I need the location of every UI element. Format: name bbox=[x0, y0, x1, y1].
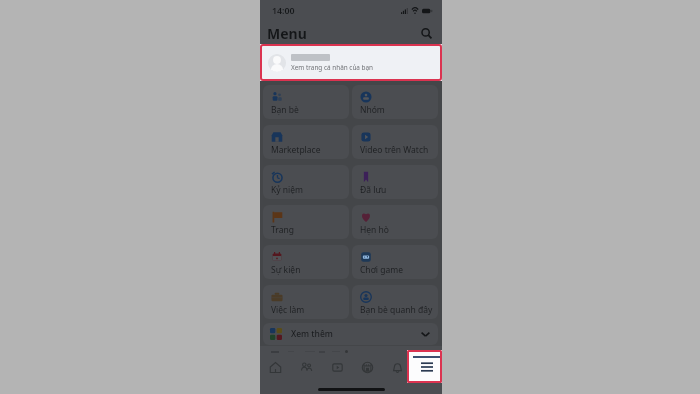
staticText: Chơi game bbox=[360, 264, 404, 276]
staticText: 14:00 bbox=[272, 5, 295, 17]
button[interactable]: Kỷ niệm bbox=[263, 165, 349, 199]
button[interactable]: Friends bbox=[291, 353, 322, 382]
button[interactable]: Bạn bè bbox=[263, 85, 349, 119]
button[interactable]: Marketplace bbox=[352, 353, 382, 382]
staticText: Bạn bè quanh đây bbox=[360, 304, 433, 316]
button[interactable]: Menu bbox=[407, 350, 442, 383]
staticText: Nhóm bbox=[360, 104, 385, 116]
staticText: Hẹn hò bbox=[360, 224, 389, 236]
staticText: Xem trang cá nhân của bạn bbox=[291, 63, 374, 72]
button[interactable]: Menu bbox=[412, 353, 442, 382]
button[interactable]: Search bbox=[419, 26, 434, 41]
button[interactable]: Đã lưu bbox=[352, 165, 438, 199]
staticText: Xem thêm bbox=[291, 328, 333, 340]
button[interactable]: Nhóm bbox=[352, 85, 438, 119]
staticText: Kỷ niệm bbox=[271, 184, 303, 196]
button[interactable]: Việc làm bbox=[263, 285, 349, 319]
staticText: Trang bbox=[271, 224, 294, 236]
staticText: Video trên Watch bbox=[360, 144, 429, 156]
button[interactable]: Home bbox=[260, 353, 291, 382]
staticText: Menu bbox=[267, 24, 307, 43]
staticText: Đã lưu bbox=[360, 184, 387, 196]
staticText: Marketplace bbox=[271, 144, 321, 156]
button[interactable]: Chơi game bbox=[352, 245, 438, 279]
button[interactable]: Bạn bè quanh đây bbox=[352, 285, 438, 319]
button[interactable]: Sự kiện bbox=[263, 245, 349, 279]
button[interactable]: Xem thêm bbox=[263, 323, 438, 345]
staticText: Sự kiện bbox=[271, 264, 301, 276]
button[interactable]: Notifications bbox=[382, 353, 412, 382]
button[interactable]: Xem trang cá nhân của bạn bbox=[260, 44, 442, 81]
button[interactable]: Video bbox=[322, 353, 352, 382]
staticText: Bạn bè bbox=[271, 104, 299, 116]
button[interactable]: Hẹn hò bbox=[352, 205, 438, 239]
button[interactable]: Trang bbox=[263, 205, 349, 239]
staticText: Việc làm bbox=[271, 304, 305, 316]
button[interactable]: Video trên Watch bbox=[352, 125, 438, 159]
button[interactable]: Marketplace bbox=[263, 125, 349, 159]
